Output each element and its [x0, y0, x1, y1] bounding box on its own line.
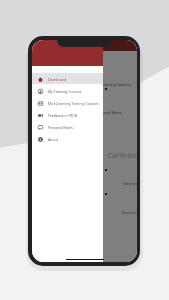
staticText: Personal Notes — [96, 110, 122, 115]
button[interactable]: About — [32, 133, 103, 145]
button[interactable]: Dashboard — [32, 73, 103, 85]
button[interactable]: Personal Notes — [32, 121, 103, 133]
button[interactable]: My eLearning Training Courses — [32, 97, 103, 109]
staticText: About — [48, 137, 58, 142]
staticText: My eLearning Training Courses — [48, 101, 99, 106]
staticText: Conferences — [108, 151, 137, 159]
staticText: Dashboard — [48, 77, 67, 82]
staticText: Personal Notes — [48, 125, 73, 130]
staticText: My eLearning Training — [93, 82, 131, 87]
staticText: Feedback in PECB — [48, 113, 78, 118]
staticText: My Training Courses — [48, 89, 82, 94]
staticText: latest news — [123, 182, 137, 186]
button[interactable]: My Training Courses — [32, 85, 103, 97]
button[interactable]: Feedback in PECB — [32, 109, 103, 121]
staticText: Read more — [122, 211, 137, 215]
